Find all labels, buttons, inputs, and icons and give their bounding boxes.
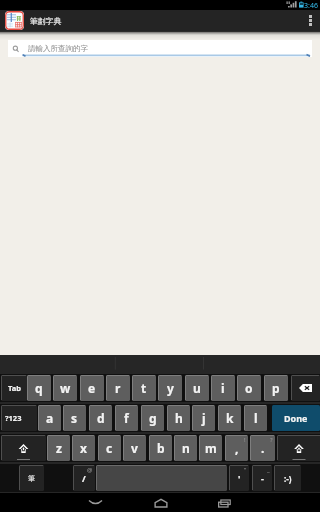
button[interactable]: y bbox=[158, 375, 182, 401]
staticText: ! bbox=[244, 436, 246, 444]
button[interactable]: s bbox=[63, 405, 86, 431]
staticText: l bbox=[254, 410, 258, 426]
staticText: c bbox=[106, 440, 113, 456]
button[interactable]: backspace bbox=[291, 375, 320, 401]
staticText: , bbox=[235, 440, 239, 456]
button[interactable]: l bbox=[244, 405, 267, 431]
staticText: Tab bbox=[8, 383, 21, 393]
staticText: p bbox=[272, 380, 280, 396]
staticText: u bbox=[193, 380, 201, 396]
staticText: w bbox=[60, 380, 71, 396]
button[interactable]: / bbox=[73, 465, 95, 491]
staticText: m bbox=[205, 440, 217, 456]
staticText: j bbox=[202, 410, 206, 426]
button[interactable]: Tab bbox=[1, 375, 27, 401]
staticText: f bbox=[124, 410, 129, 426]
button[interactable]: Back bbox=[83, 493, 108, 512]
staticText: x bbox=[80, 440, 87, 456]
staticText: q bbox=[35, 380, 43, 396]
button[interactable]: 請輸入所查詢的字 bbox=[8, 40, 312, 57]
button[interactable]: e bbox=[80, 375, 104, 401]
button[interactable]: Home bbox=[148, 493, 173, 512]
button[interactable]: k bbox=[218, 405, 241, 431]
button[interactable]: w bbox=[53, 375, 77, 401]
button[interactable]: g bbox=[141, 405, 164, 431]
staticText: @ bbox=[87, 466, 93, 474]
staticText: _ bbox=[267, 466, 270, 474]
button[interactable]: Done bbox=[272, 405, 320, 431]
button[interactable]: i bbox=[211, 375, 235, 401]
button[interactable]: b bbox=[149, 435, 172, 461]
staticText: Done bbox=[284, 412, 308, 424]
staticText: / bbox=[82, 472, 86, 484]
staticText: ? bbox=[270, 436, 273, 444]
staticText: 筆劃字典 bbox=[30, 16, 62, 26]
button[interactable]: j bbox=[192, 405, 215, 431]
button[interactable]: space bbox=[96, 465, 227, 491]
button[interactable]: f bbox=[115, 405, 138, 431]
staticText: o bbox=[245, 380, 253, 396]
staticText: ?123 bbox=[5, 413, 22, 423]
staticText: 3:46 bbox=[304, 1, 318, 11]
button[interactable]: ' bbox=[229, 465, 249, 491]
staticText: g bbox=[149, 410, 157, 426]
button[interactable]: v bbox=[123, 435, 146, 461]
button[interactable]: d bbox=[89, 405, 112, 431]
staticText: 請輸入所查詢的字 bbox=[28, 44, 88, 53]
staticText: h bbox=[175, 410, 183, 426]
button[interactable]: - bbox=[252, 465, 272, 491]
button[interactable]: App icon bbox=[5, 11, 24, 30]
staticText: e bbox=[88, 380, 96, 396]
button[interactable]: p bbox=[264, 375, 288, 401]
button[interactable]: Recent apps bbox=[212, 493, 237, 512]
button[interactable]: , bbox=[225, 435, 248, 461]
staticText: z bbox=[56, 440, 62, 456]
staticText: . bbox=[261, 440, 265, 456]
button[interactable]: a bbox=[38, 405, 61, 431]
button[interactable]: r bbox=[106, 375, 130, 401]
button[interactable]: x bbox=[72, 435, 95, 461]
button[interactable]: t bbox=[132, 375, 156, 401]
staticText: v bbox=[131, 440, 138, 456]
button[interactable]: z bbox=[47, 435, 70, 461]
button[interactable]: ?123 bbox=[1, 405, 37, 431]
button[interactable]: More options bbox=[300, 10, 320, 31]
staticText: y bbox=[167, 380, 174, 396]
staticText: k bbox=[226, 410, 234, 426]
button[interactable]: n bbox=[174, 435, 197, 461]
staticText: ' bbox=[238, 472, 241, 484]
staticText: t bbox=[141, 380, 147, 396]
button[interactable]: h bbox=[167, 405, 190, 431]
button[interactable]: shift bbox=[277, 435, 320, 461]
button[interactable]: m bbox=[199, 435, 222, 461]
staticText: - bbox=[261, 472, 264, 484]
button[interactable]: shift bbox=[1, 435, 46, 461]
staticText: " bbox=[244, 466, 247, 474]
staticText: s bbox=[71, 410, 78, 426]
staticText: a bbox=[46, 410, 54, 426]
staticText: i bbox=[221, 380, 225, 396]
button[interactable]: . bbox=[250, 435, 275, 461]
staticText: r bbox=[115, 380, 121, 396]
staticText: :-) bbox=[284, 473, 292, 484]
button[interactable]: o bbox=[237, 375, 261, 401]
button[interactable]: q bbox=[27, 375, 51, 401]
staticText: n bbox=[182, 440, 190, 456]
button[interactable]: c bbox=[98, 435, 121, 461]
staticText: d bbox=[97, 410, 105, 426]
staticText: b bbox=[157, 440, 165, 456]
staticText: 筆 bbox=[28, 474, 35, 483]
button[interactable]: ime bbox=[19, 465, 44, 491]
button[interactable]: :-) bbox=[274, 465, 301, 491]
button[interactable]: u bbox=[185, 375, 209, 401]
